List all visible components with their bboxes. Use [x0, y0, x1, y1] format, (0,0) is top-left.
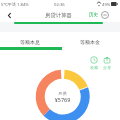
staticText: 49% [102, 2, 111, 8]
button[interactable]: 历史 [89, 12, 99, 18]
staticText: 收藏 [90, 65, 98, 70]
staticText: 02:36 [54, 2, 65, 8]
staticText: 房贷计算器 [45, 12, 72, 19]
staticText: 等额本金 [80, 39, 100, 45]
staticText: 5℃平淡 1.84% [1, 2, 29, 8]
staticText: 分享 [103, 65, 111, 70]
staticText: 等额本息 [20, 39, 40, 45]
button[interactable]: Account [101, 11, 109, 19]
button[interactable]: 分享 [103, 56, 111, 70]
staticText: ¥5769 [46, 96, 79, 103]
button[interactable]: 收藏 [90, 56, 98, 70]
button[interactable]: 等额本金 [60, 37, 120, 47]
staticText: 月供 [46, 91, 79, 97]
staticText: 历史 [89, 12, 99, 18]
button[interactable]: Back [4, 10, 15, 21]
button[interactable]: 等额本息 [0, 37, 60, 47]
